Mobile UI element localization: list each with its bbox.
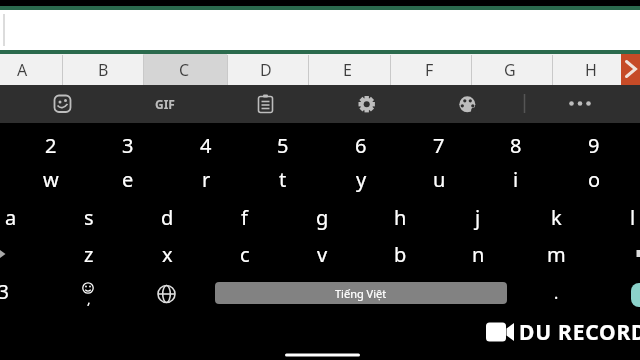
staticText: r — [202, 166, 211, 193]
button[interactable]: B — [73, 52, 133, 88]
staticText: G — [504, 59, 516, 81]
button[interactable]: o — [564, 161, 624, 197]
staticText: l — [630, 204, 636, 231]
staticText: 8 — [510, 132, 522, 159]
staticText: D — [260, 59, 272, 81]
button[interactable]: E — [317, 52, 377, 88]
staticText: e — [122, 166, 134, 193]
staticText: n — [472, 241, 485, 268]
staticText: 3 — [0, 279, 9, 305]
staticText: m — [547, 241, 566, 268]
button[interactable] — [449, 85, 487, 122]
staticText: h — [394, 204, 407, 231]
button[interactable] — [348, 85, 386, 122]
staticText: g — [316, 204, 329, 231]
staticText: w — [43, 166, 59, 193]
button[interactable]: A — [0, 52, 52, 88]
button[interactable] — [631, 283, 640, 307]
button[interactable] — [246, 85, 284, 122]
button[interactable]: c — [215, 236, 275, 272]
button[interactable]: . — [526, 275, 586, 311]
staticText: C — [179, 59, 190, 81]
button[interactable]: t — [253, 161, 313, 197]
button[interactable]: j — [448, 199, 508, 235]
staticText: o — [588, 166, 601, 193]
button[interactable] — [621, 54, 640, 85]
button[interactable]: d — [137, 199, 197, 235]
button[interactable]: s — [59, 199, 119, 235]
button[interactable]: C — [154, 52, 214, 88]
button[interactable]: 2 — [21, 127, 81, 163]
button[interactable]: 7 — [409, 127, 469, 163]
button[interactable]: h — [370, 199, 430, 235]
button[interactable]: m — [526, 236, 586, 272]
button[interactable]: v — [292, 236, 352, 272]
staticText: 5 — [277, 132, 289, 159]
staticText: x — [162, 241, 173, 268]
staticText: 2 — [45, 132, 57, 159]
button[interactable]: , — [59, 281, 119, 317]
staticText: k — [551, 204, 562, 231]
staticText: 9 — [588, 132, 600, 159]
button[interactable]: l — [603, 199, 640, 235]
button[interactable] — [146, 85, 184, 122]
button[interactable]: 6 — [331, 127, 391, 163]
button[interactable]: w — [21, 161, 81, 197]
staticText: b — [394, 241, 407, 268]
staticText: 6 — [355, 132, 367, 159]
button[interactable]: k — [526, 199, 586, 235]
staticText: . — [554, 282, 559, 304]
staticText: t — [279, 166, 287, 193]
button[interactable]: r — [176, 161, 236, 197]
button[interactable] — [561, 85, 599, 122]
button[interactable]: 3 — [98, 127, 158, 163]
staticText: u — [433, 166, 446, 193]
button[interactable]: 5 — [253, 127, 313, 163]
button[interactable]: F — [399, 52, 459, 88]
staticText: c — [240, 241, 250, 268]
button[interactable]: e — [98, 161, 158, 197]
staticText: E — [343, 59, 352, 81]
button[interactable]: D — [236, 52, 296, 88]
button[interactable] — [43, 85, 81, 122]
staticText: d — [161, 204, 174, 231]
staticText: z — [84, 241, 94, 268]
button[interactable]: 9 — [564, 127, 624, 163]
button[interactable]: b — [370, 236, 430, 272]
button[interactable]: 3 — [0, 274, 33, 310]
staticText: F — [425, 59, 434, 81]
staticText: H — [585, 59, 597, 81]
staticText: 4 — [200, 132, 212, 159]
button[interactable]: f — [214, 199, 274, 235]
button[interactable]: a — [0, 199, 41, 235]
button[interactable]: z — [59, 236, 119, 272]
staticText: B — [98, 59, 109, 81]
button[interactable]: x — [137, 236, 197, 272]
staticText: 3 — [122, 132, 134, 159]
staticText: Tiếng Việt — [335, 286, 387, 301]
button[interactable]: i — [486, 161, 546, 197]
staticText: f — [241, 204, 248, 231]
button[interactable]: 8 — [486, 127, 546, 163]
button[interactable]: g — [292, 199, 352, 235]
staticText: j — [475, 204, 481, 231]
staticText: s — [84, 204, 94, 231]
staticText: A — [17, 59, 28, 81]
staticText: a — [5, 204, 17, 231]
button[interactable]: u — [409, 161, 469, 197]
button[interactable]: G — [480, 52, 540, 88]
staticText: y — [356, 166, 367, 193]
button[interactable]: 4 — [176, 127, 236, 163]
staticText: i — [513, 166, 519, 193]
button[interactable]: H — [561, 52, 621, 88]
button[interactable]: n — [448, 236, 508, 272]
staticText: , — [87, 290, 91, 308]
staticText: v — [317, 241, 328, 268]
button[interactable]: Tiếng Việt — [215, 282, 507, 304]
button[interactable]: y — [331, 161, 391, 197]
staticText: 7 — [433, 132, 445, 159]
staticText: GIF — [155, 96, 175, 112]
button[interactable]: GIF — [135, 86, 195, 122]
staticText: DU RECORD — [519, 318, 640, 347]
